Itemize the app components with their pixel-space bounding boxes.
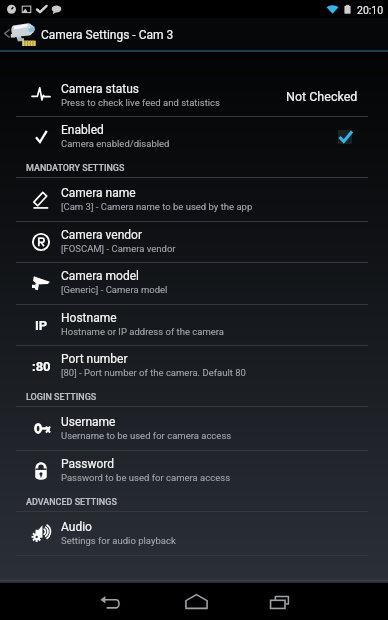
staticText: Camera status bbox=[61, 82, 139, 96]
staticText: LOGIN SETTINGS bbox=[26, 392, 97, 403]
staticText: Settings for audio playback bbox=[61, 535, 176, 546]
button[interactable]: Camera name bbox=[0, 179, 388, 221]
staticText: [80] - Port number of the camera. Defaul… bbox=[61, 367, 246, 378]
button[interactable]: Back bbox=[76, 583, 144, 620]
button[interactable]: Audio bbox=[0, 513, 388, 555]
staticText: [Cam 3] - Camera name to be used by the … bbox=[61, 201, 253, 212]
button[interactable]: Recents bbox=[245, 583, 313, 620]
staticText: Camera name bbox=[61, 186, 136, 200]
button[interactable]: Camera status bbox=[0, 75, 388, 117]
staticText: :80 bbox=[32, 359, 51, 374]
staticText: Not Checked bbox=[286, 89, 358, 104]
staticText: IP bbox=[35, 318, 48, 333]
staticText: Username bbox=[61, 415, 116, 429]
staticText: ADVANCED SETTINGS bbox=[26, 497, 117, 508]
staticText: Hostname bbox=[61, 311, 117, 325]
staticText: Camera model bbox=[61, 269, 139, 283]
staticText: [FOSCAM] - Camera vendor bbox=[61, 243, 176, 254]
staticText: Password to be used for camera access bbox=[61, 472, 231, 483]
button[interactable]: Username bbox=[0, 408, 388, 450]
button[interactable]: Camera vendor bbox=[0, 221, 388, 263]
staticText: Hostname or IP address of the camera bbox=[61, 326, 225, 337]
staticText: Camera Settings - Cam 3 bbox=[41, 28, 174, 42]
button[interactable]: Home bbox=[162, 583, 230, 620]
staticText: Press to check live feed and statistics bbox=[61, 97, 220, 108]
button[interactable]: IP bbox=[0, 304, 388, 346]
staticText: Camera enabled/disabled bbox=[61, 138, 170, 149]
staticText: Camera vendor bbox=[61, 228, 142, 242]
staticText: Port number bbox=[61, 352, 128, 366]
button[interactable]: Camera model bbox=[0, 262, 388, 304]
button[interactable]: :80 bbox=[0, 345, 388, 387]
staticText: Password bbox=[61, 457, 115, 471]
staticText: Audio bbox=[61, 520, 92, 534]
staticText: Enabled bbox=[61, 123, 104, 137]
staticText: 20:10 bbox=[357, 4, 384, 16]
staticText: [Generic] - Camera model bbox=[61, 284, 168, 295]
staticText: MANDATORY SETTINGS bbox=[26, 163, 125, 174]
button[interactable]: Camera Settings - Cam 3 bbox=[0, 18, 388, 52]
staticText: Username to be used for camera access bbox=[61, 430, 232, 441]
button[interactable]: Password bbox=[0, 450, 388, 492]
button[interactable]: Enabled bbox=[0, 116, 388, 158]
